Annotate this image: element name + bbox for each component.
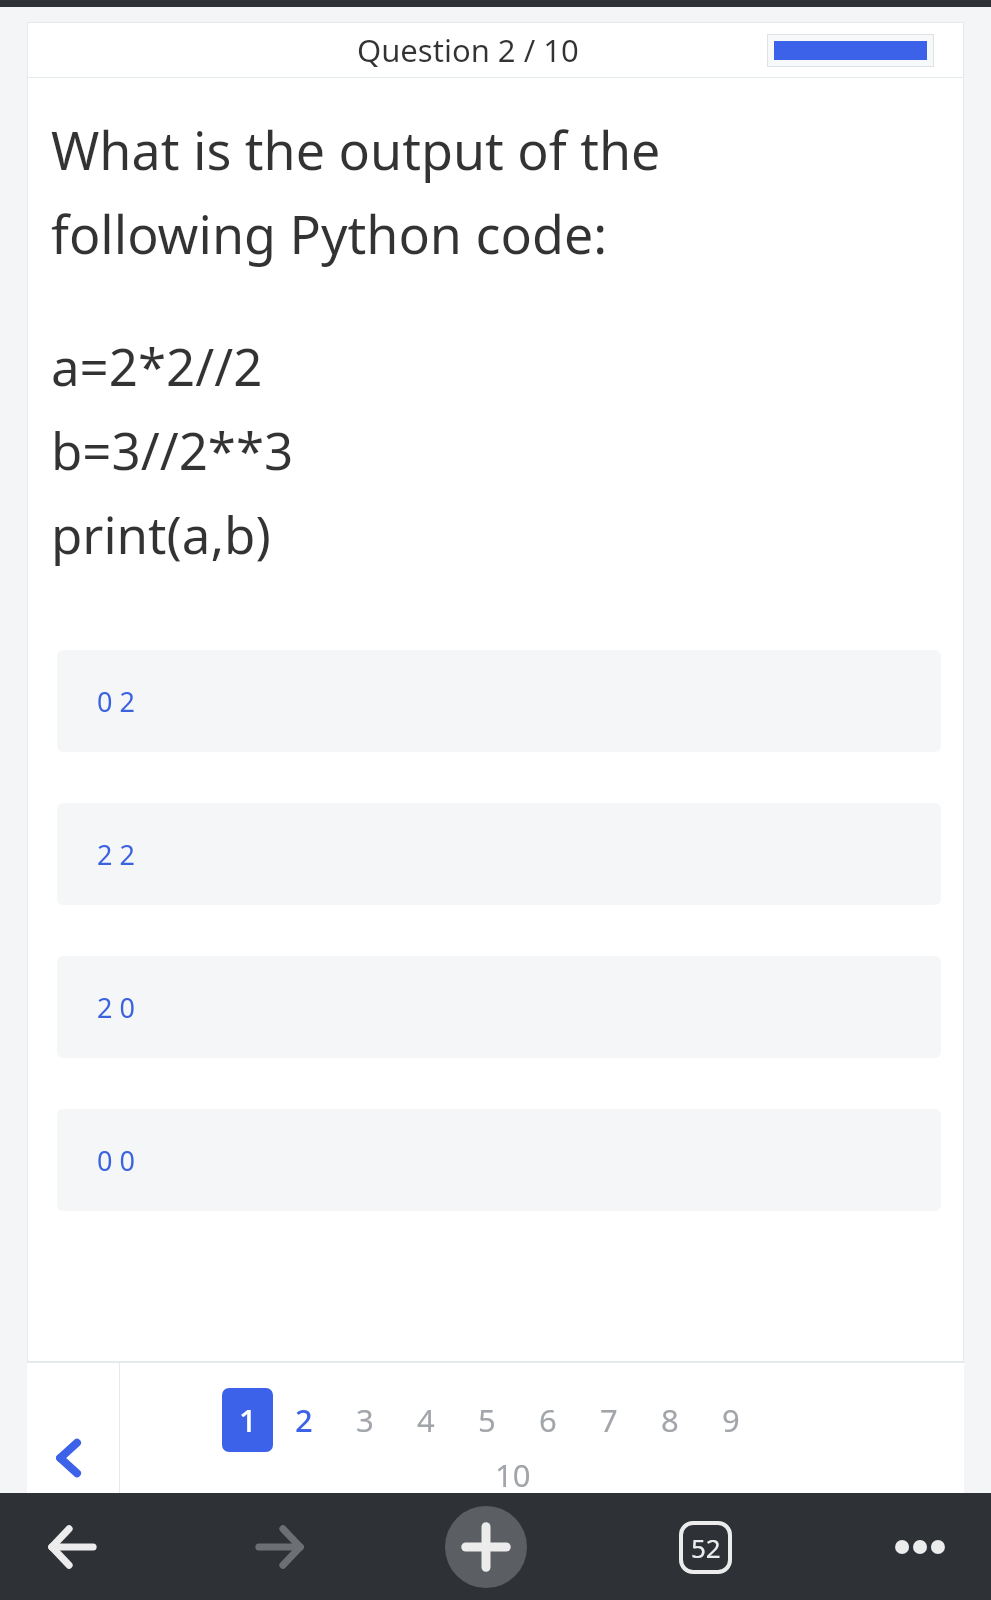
button[interactable]: 0 0	[57, 1109, 941, 1211]
staticText: 0 2	[97, 683, 135, 720]
staticText: 0 0	[97, 1142, 135, 1179]
button[interactable]: Previous page	[27, 1362, 119, 1493]
button[interactable]: 7	[578, 1388, 639, 1452]
staticText: 4	[417, 1399, 435, 1441]
button[interactable]: 5	[456, 1388, 517, 1452]
staticText: a=2*2//2 b=3//2**3 print(a,b)	[51, 331, 294, 569]
button[interactable]: Forward	[240, 1507, 320, 1587]
button[interactable]: 6	[517, 1388, 578, 1452]
button[interactable]: 8	[639, 1388, 700, 1452]
button[interactable]: 2 2	[57, 803, 941, 905]
staticText: 8	[661, 1399, 679, 1441]
staticText: 52	[691, 1530, 721, 1565]
staticText: 9	[722, 1399, 740, 1441]
button[interactable]: More options	[877, 1504, 963, 1590]
staticText: What is the output of the following Pyth…	[51, 114, 661, 269]
button[interactable]: 3	[334, 1388, 395, 1452]
button[interactable]: 0 2	[57, 650, 941, 752]
button[interactable]: 1	[222, 1388, 273, 1452]
button[interactable]: 4	[395, 1388, 456, 1452]
staticText: 2 0	[97, 989, 135, 1026]
staticText: 3	[356, 1399, 374, 1441]
button[interactable]: Tabs, 52 open	[655, 1497, 755, 1597]
button[interactable]: 10	[482, 1452, 543, 1498]
staticText: 6	[539, 1399, 557, 1441]
staticText: 1	[239, 1399, 257, 1441]
staticText: 2 2	[97, 836, 135, 873]
staticText: 5	[478, 1399, 496, 1441]
staticText: Question 2 / 10	[357, 29, 579, 71]
staticText: 10	[495, 1454, 531, 1496]
button[interactable]: 2 0	[57, 956, 941, 1058]
button[interactable]: 9	[700, 1388, 761, 1452]
button[interactable]: Back	[32, 1507, 112, 1587]
staticText: 7	[600, 1399, 618, 1441]
staticText: 2	[295, 1399, 313, 1441]
button[interactable]: 2	[273, 1388, 334, 1452]
button[interactable]: New tab	[445, 1506, 527, 1588]
